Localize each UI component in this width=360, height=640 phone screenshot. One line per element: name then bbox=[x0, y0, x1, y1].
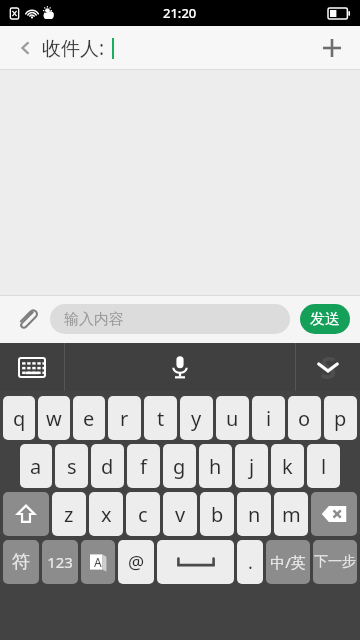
staticText: b bbox=[211, 501, 224, 528]
button[interactable]: c bbox=[126, 492, 160, 536]
button[interactable]: f bbox=[127, 444, 160, 488]
button[interactable]: . bbox=[237, 540, 263, 584]
button[interactable]: k bbox=[271, 444, 304, 488]
button[interactable]: r bbox=[108, 396, 141, 440]
staticText: z bbox=[64, 501, 74, 528]
staticText: w bbox=[46, 405, 62, 432]
button[interactable]: u bbox=[216, 396, 249, 440]
staticText: 21:20 bbox=[163, 4, 197, 22]
button[interactable]: 中/英 bbox=[266, 540, 310, 584]
staticText: @ bbox=[128, 550, 145, 575]
button[interactable]: t bbox=[144, 396, 177, 440]
staticText: r bbox=[120, 405, 129, 432]
staticText: S bbox=[320, 347, 337, 388]
button[interactable]: n bbox=[237, 492, 271, 536]
button[interactable]: d bbox=[91, 444, 124, 488]
button[interactable]: a bbox=[20, 444, 52, 488]
staticText: . bbox=[248, 550, 253, 575]
staticText: y bbox=[191, 405, 202, 432]
button[interactable]: b bbox=[200, 492, 234, 536]
button[interactable]: x bbox=[89, 492, 123, 536]
button[interactable]: w bbox=[38, 396, 70, 440]
staticText: 中/英 bbox=[270, 552, 306, 572]
button[interactable]: Voice input bbox=[65, 343, 295, 391]
staticText: k bbox=[282, 453, 293, 480]
staticText: s bbox=[67, 453, 77, 480]
button[interactable]: 123 bbox=[42, 540, 78, 584]
staticText: p bbox=[334, 405, 347, 432]
staticText: f bbox=[140, 453, 147, 480]
button[interactable]: j bbox=[235, 444, 268, 488]
button[interactable]: l bbox=[307, 444, 340, 488]
staticText: q bbox=[13, 405, 26, 432]
staticText: j bbox=[249, 453, 255, 480]
staticText: x bbox=[101, 501, 112, 528]
button[interactable]: h bbox=[199, 444, 232, 488]
button[interactable]: Add recipient bbox=[314, 30, 350, 66]
staticText: c bbox=[138, 501, 148, 528]
button[interactable]: 符 bbox=[3, 540, 39, 584]
button[interactable]: 输入内容 bbox=[50, 304, 290, 334]
staticText: 123 bbox=[47, 552, 73, 572]
button[interactable]: y bbox=[180, 396, 213, 440]
button[interactable]: m bbox=[274, 492, 308, 536]
button[interactable]: Keyboard layout bbox=[0, 343, 64, 391]
button[interactable]: Back bbox=[10, 33, 40, 63]
button[interactable]: s bbox=[55, 444, 88, 488]
button[interactable]: q bbox=[3, 396, 35, 440]
staticText: v bbox=[175, 501, 186, 528]
staticText: m bbox=[282, 501, 301, 528]
button[interactable]: Input method bbox=[81, 540, 115, 584]
staticText: g bbox=[173, 453, 186, 480]
staticText: o bbox=[298, 405, 311, 432]
staticText: 下一步 bbox=[314, 553, 356, 571]
staticText: t bbox=[157, 405, 165, 432]
button[interactable]: @ bbox=[118, 540, 154, 584]
button[interactable]: Space bbox=[157, 540, 234, 584]
staticText: 发送 bbox=[310, 310, 340, 329]
button[interactable]: i bbox=[252, 396, 285, 440]
staticText: 符 bbox=[12, 551, 30, 574]
button[interactable]: o bbox=[288, 396, 321, 440]
button[interactable]: Shift bbox=[3, 492, 49, 536]
staticText: d bbox=[101, 453, 114, 480]
staticText: l bbox=[321, 453, 327, 480]
button[interactable]: Backspace bbox=[311, 492, 357, 536]
staticText: i bbox=[266, 405, 272, 432]
button[interactable]: p bbox=[324, 396, 357, 440]
button[interactable]: Hide keyboard bbox=[296, 343, 360, 391]
button[interactable]: g bbox=[163, 444, 196, 488]
staticText: h bbox=[209, 453, 222, 480]
staticText: 输入内容 bbox=[64, 310, 124, 329]
staticText: a bbox=[30, 453, 42, 480]
staticText: A bbox=[94, 554, 102, 570]
button[interactable]: v bbox=[163, 492, 197, 536]
staticText: 收件人: bbox=[42, 35, 105, 61]
staticText: u bbox=[226, 405, 239, 432]
button[interactable]: 发送 bbox=[300, 304, 350, 334]
staticText: n bbox=[248, 501, 261, 528]
button[interactable]: z bbox=[52, 492, 86, 536]
button[interactable]: 下一步 bbox=[313, 540, 357, 584]
button[interactable]: Attach bbox=[10, 302, 44, 336]
staticText: e bbox=[83, 405, 95, 432]
button[interactable]: e bbox=[73, 396, 105, 440]
